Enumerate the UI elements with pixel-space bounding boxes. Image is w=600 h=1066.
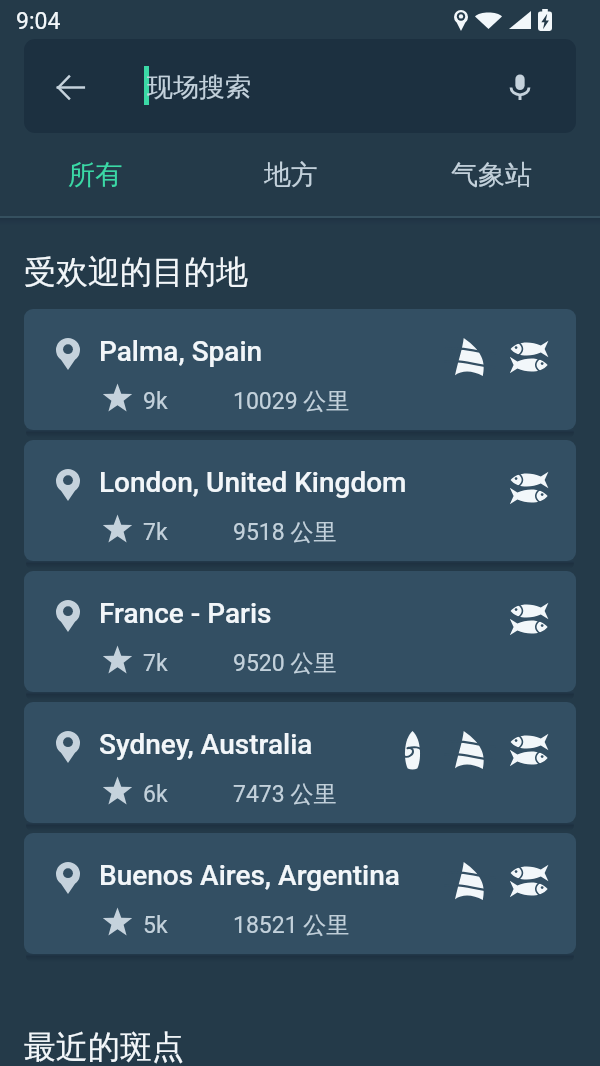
- button[interactable]: Palma, Spain: [24, 309, 576, 430]
- staticText: 7k: [143, 650, 168, 677]
- button[interactable]: London, United Kingdom: [24, 440, 576, 561]
- staticText: 气象站: [451, 158, 532, 192]
- button[interactable]: 气象站: [392, 133, 590, 217]
- staticText: 地方: [264, 158, 318, 192]
- staticText: 9:04: [16, 8, 61, 35]
- button[interactable]: 所有: [0, 133, 190, 217]
- staticText: Buenos Aires, Argentina: [99, 859, 400, 891]
- staticText: 9k: [143, 388, 168, 415]
- button[interactable]: 地方: [190, 133, 392, 217]
- staticText: 18521 公里: [233, 911, 350, 939]
- button[interactable]: Buenos Aires, Argentina: [24, 833, 576, 954]
- staticText: 6k: [143, 781, 168, 808]
- staticText: Sydney, Australia: [99, 728, 313, 760]
- staticText: France - Paris: [99, 597, 272, 629]
- staticText: 所有: [68, 158, 122, 192]
- staticText: 9518 公里: [233, 518, 337, 546]
- staticText: 受欢迎的目的地: [24, 252, 248, 292]
- staticText: 现场搜索: [147, 71, 251, 104]
- staticText: 7k: [143, 519, 168, 546]
- staticText: London, United Kingdom: [99, 466, 407, 498]
- button[interactable]: Back: [46, 63, 94, 111]
- staticText: 9520 公里: [233, 649, 337, 677]
- staticText: 5k: [143, 912, 168, 939]
- staticText: 最近的斑点: [24, 1027, 184, 1066]
- button[interactable]: Voice search: [498, 65, 542, 109]
- staticText: 10029 公里: [233, 387, 350, 415]
- button[interactable]: Sydney, Australia: [24, 702, 576, 823]
- staticText: 7473 公里: [233, 780, 337, 808]
- button[interactable]: France - Paris: [24, 571, 576, 692]
- staticText: Palma, Spain: [99, 335, 263, 367]
